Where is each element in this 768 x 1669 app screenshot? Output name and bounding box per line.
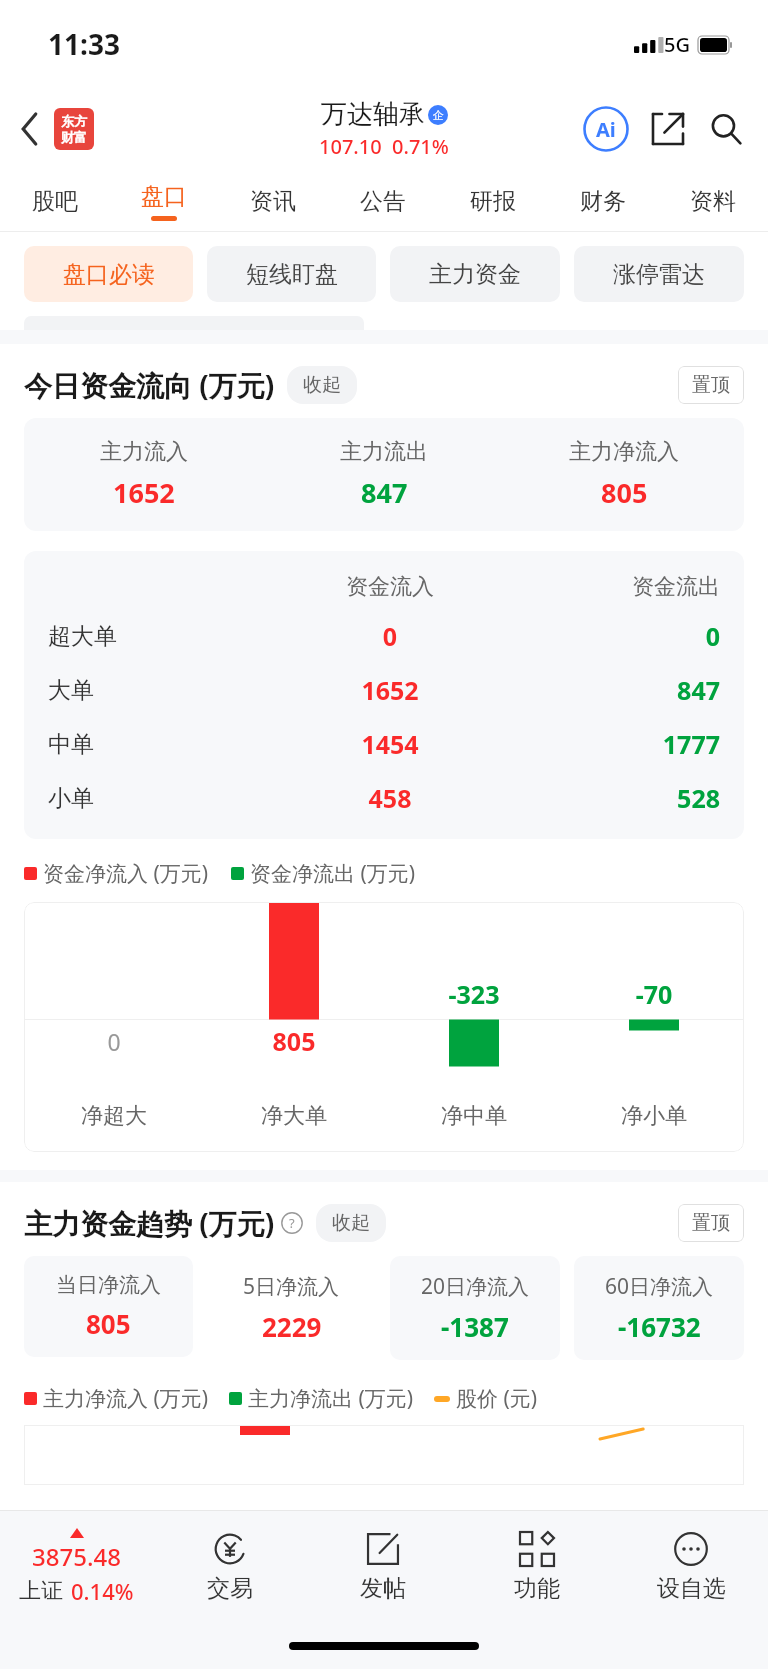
staticText: 主力流出 [340,438,428,466]
button[interactable]: Help [280,1211,304,1235]
button[interactable]: 公告 [328,170,438,232]
button[interactable]: 收起 [287,366,357,404]
staticText: 1777 [500,727,720,761]
staticText: 528 [500,781,720,815]
staticText: 股价 (元) [456,1384,538,1413]
staticText: 短线盯盘 [246,260,338,289]
button[interactable]: AI assistant [580,103,632,155]
staticText: 11:33 [48,25,120,63]
staticText: 资金净流入 (万元) [43,859,209,888]
staticText: -323 [384,977,564,1011]
button[interactable]: 盘口必读 [24,246,193,302]
button[interactable]: 交易 [153,1511,306,1623]
button[interactable]: 资料 [658,170,768,232]
staticText: 置顶 [692,1211,730,1235]
button[interactable]: Share [644,105,692,153]
button[interactable]: 20日净流入 [390,1256,560,1360]
staticText: 主力净流入 (万元) [43,1384,209,1413]
button[interactable]: Search [702,105,750,153]
staticText: ? [289,1214,295,1232]
staticText: 0.71% [392,133,449,160]
staticText: Ai [596,116,616,143]
staticText: 805 [86,1306,131,1341]
staticText: 主力资金 [429,260,521,289]
staticText: 主力流入 [100,438,188,466]
staticText: 资讯 [250,187,296,216]
button[interactable]: 股吧 [0,170,109,232]
staticText: 研报 [470,187,516,216]
staticText: 交易 [207,1574,253,1603]
staticText: 净中单 [384,1102,564,1130]
staticText: 847 [361,474,408,511]
staticText: 当日净流入 [56,1272,161,1298]
button[interactable]: 60日净流入 [574,1256,744,1360]
staticText: 涨停雷达 [613,260,705,289]
staticText: 今日资金流向 (万元) [24,366,275,404]
staticText: 万达轴承 [321,98,425,131]
staticText: 主力资金趋势 (万元) [24,1204,275,1242]
staticText: 中单 [48,730,280,759]
staticText: 盘口必读 [63,260,155,289]
staticText: 5日净流入 [243,1272,340,1301]
button[interactable]: Back [10,109,50,149]
button[interactable]: 研报 [438,170,548,232]
staticText: 资金净流出 (万元) [250,859,416,888]
button[interactable]: 3875.48 [0,1511,153,1623]
staticText: 资料 [690,187,736,216]
staticText: 107.10 [319,133,382,160]
staticText: 0 [280,619,500,653]
staticText: 净小单 [564,1102,744,1130]
staticText: 5G [664,31,690,58]
staticText: 1652 [113,474,175,511]
staticText: 大单 [48,676,280,705]
staticText: 净超大 [24,1102,204,1130]
staticText: 60日净流入 [605,1272,714,1301]
button[interactable]: 涨停雷达 [574,246,744,302]
staticText: 847 [500,673,720,707]
staticText: 805 [601,474,648,511]
button[interactable]: East Money home [54,108,94,150]
button[interactable]: 置顶 [678,1204,744,1242]
staticText: -1387 [441,1309,509,1344]
staticText: 资金流出 [500,573,720,601]
staticText: 股吧 [32,187,78,216]
staticText: 置顶 [692,373,730,397]
staticText: 公告 [360,187,406,216]
staticText: -70 [564,977,744,1011]
staticText: 0.14% [71,1576,134,1606]
button[interactable]: 功能 [460,1511,614,1623]
staticText: 0 [500,619,720,653]
button[interactable]: 主力资金 [390,246,560,302]
staticText: 458 [280,781,500,815]
staticText: 20日净流入 [421,1272,530,1301]
button[interactable]: 设自选 [614,1511,768,1623]
button[interactable]: 财务 [548,170,658,232]
staticText: 财富 [61,129,87,145]
staticText: 1454 [280,727,500,761]
button[interactable]: 5日净流入 [207,1256,376,1360]
staticText: 0 [24,1026,204,1057]
button[interactable]: 发帖 [306,1511,460,1623]
staticText: 上证 [19,1577,63,1605]
staticText: 功能 [514,1574,560,1603]
staticText: 超大单 [48,622,280,651]
button[interactable]: 当日净流入 [24,1256,193,1357]
staticText: 资金流入 [280,573,500,601]
button[interactable]: 短线盯盘 [207,246,376,302]
button[interactable]: 收起 [316,1204,386,1242]
staticText: 主力净流入 [569,438,679,466]
staticText: 1652 [280,673,500,707]
staticText: 盘口 [141,182,187,211]
staticText: -16732 [618,1309,701,1344]
staticText: 3875.48 [32,1540,121,1573]
button[interactable]: 置顶 [678,366,744,404]
button[interactable]: 资讯 [218,170,328,232]
staticText: 企 [433,108,444,122]
staticText: 2229 [262,1309,322,1344]
staticText: 东方 [61,113,87,129]
staticText: 净大单 [204,1102,384,1130]
button[interactable]: 盘口 [109,170,218,232]
staticText: 小单 [48,784,280,813]
staticText: 财务 [580,187,626,216]
staticText: 设自选 [657,1574,726,1603]
